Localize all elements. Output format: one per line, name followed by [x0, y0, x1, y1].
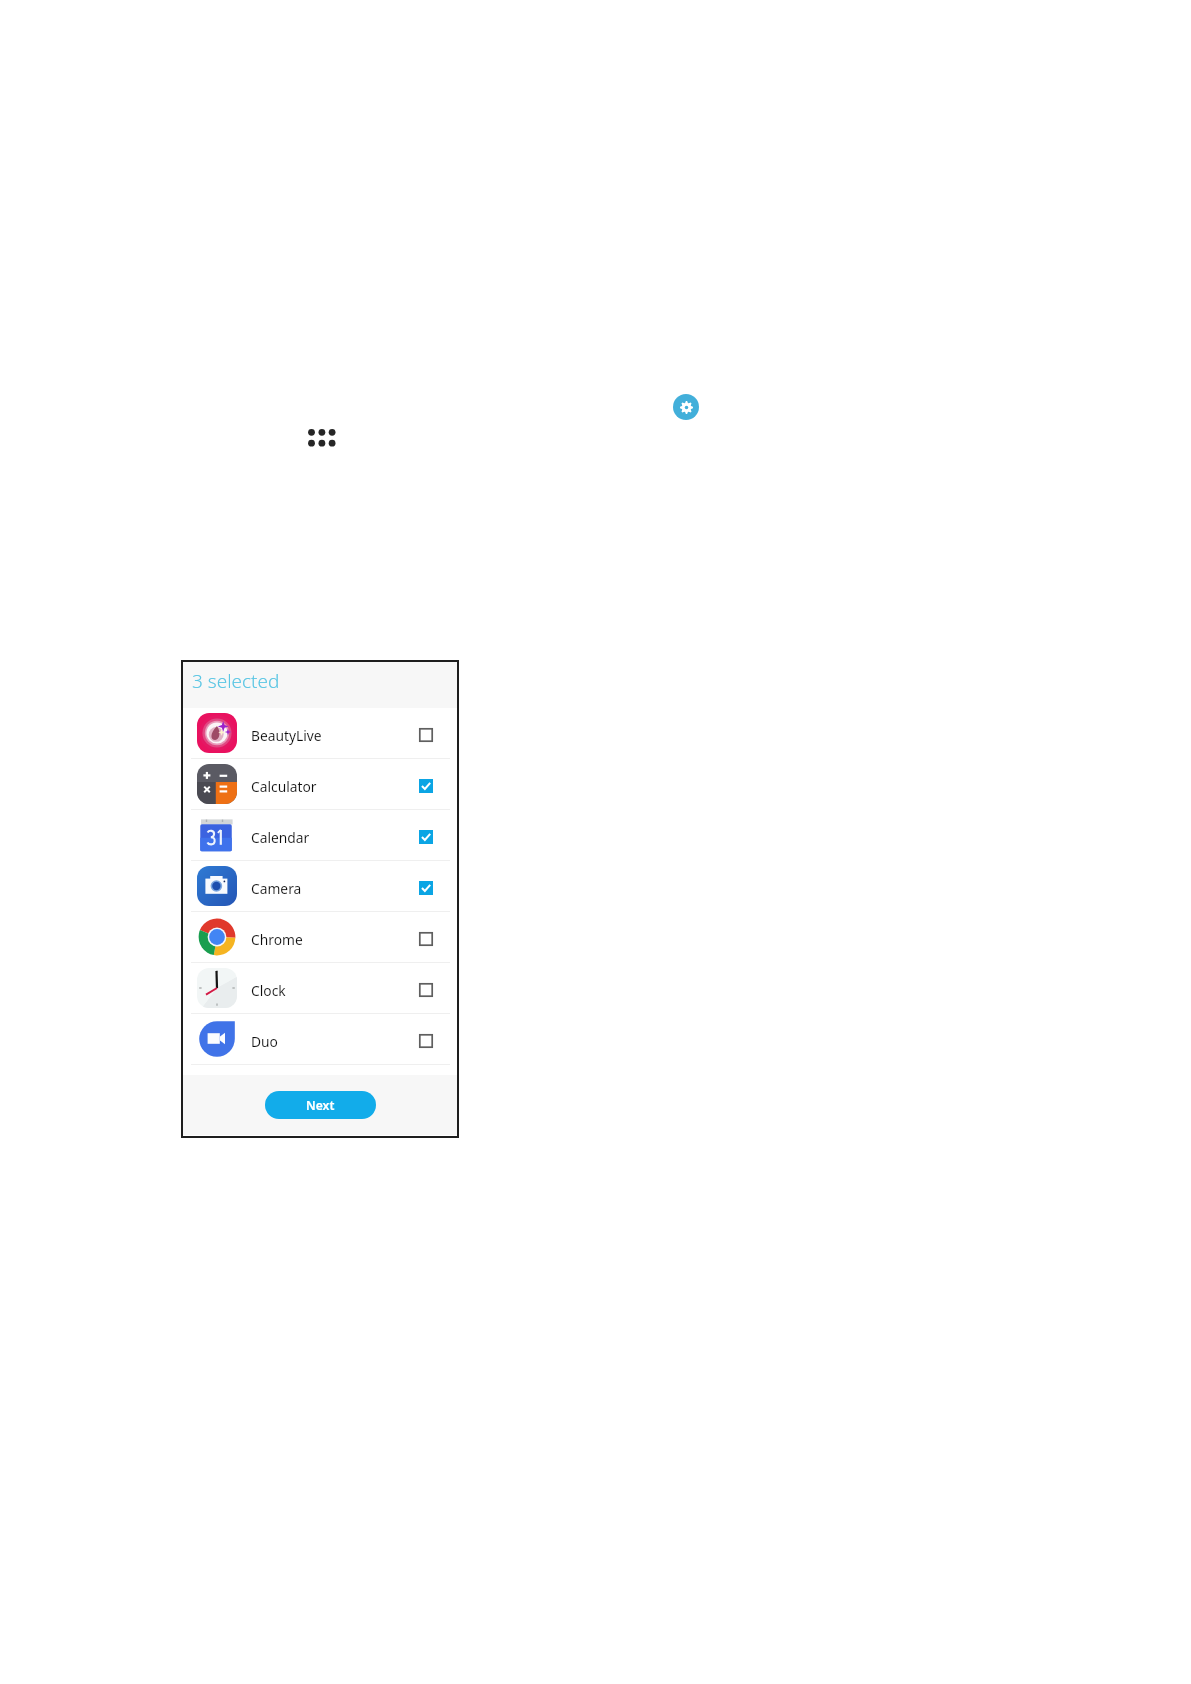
button[interactable]: Duo	[182, 1014, 458, 1064]
button[interactable]: BeautyLive	[182, 708, 458, 758]
button[interactable]: Next	[265, 1091, 376, 1119]
staticText: Camera	[251, 879, 302, 898]
staticText: Chrome	[251, 930, 303, 949]
button[interactable]: Chrome	[182, 912, 458, 962]
button[interactable]: Calculator	[182, 759, 458, 809]
staticText: BeautyLive	[251, 726, 322, 745]
staticText: Calculator	[251, 777, 317, 796]
staticText: Clock	[251, 981, 286, 1000]
staticText: Calendar	[251, 828, 310, 847]
button[interactable]: Settings	[673, 394, 699, 420]
staticText: Duo	[251, 1032, 278, 1051]
button[interactable]: All apps	[304, 425, 336, 451]
staticText: 3 selected	[192, 668, 280, 694]
button[interactable]: Calendar	[182, 810, 458, 860]
button[interactable]: Clock	[182, 963, 458, 1013]
button[interactable]: Camera	[182, 861, 458, 911]
staticText: Next	[306, 1097, 335, 1114]
